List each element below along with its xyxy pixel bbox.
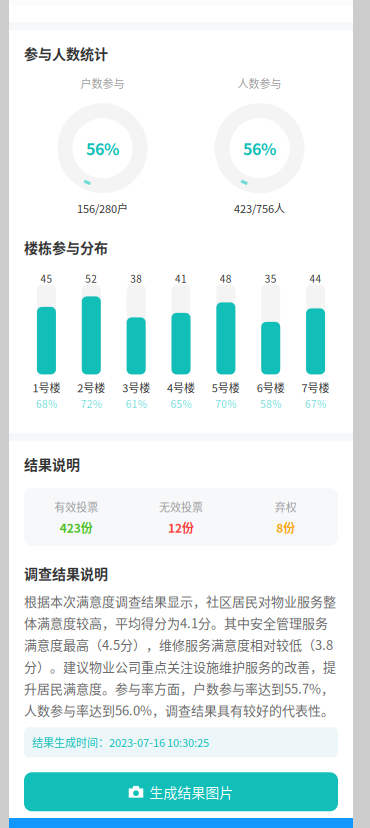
staticText: 35 [265, 271, 277, 286]
staticText: 3号楼 [122, 379, 150, 395]
staticText: 2号楼 [77, 379, 105, 395]
staticText: 8份 [276, 519, 295, 536]
staticText: 423/756人 [234, 200, 285, 216]
staticText: 楼栋参与分布 [24, 237, 108, 257]
staticText: 1号楼 [32, 379, 60, 395]
staticText: 人数参与 [237, 75, 281, 91]
staticText: 弃权 [275, 499, 297, 514]
staticText: 67% [305, 396, 326, 411]
button[interactable]: 生成结果图片 [24, 772, 338, 811]
staticText: 70% [215, 396, 236, 411]
staticText: 156/280户 [77, 200, 128, 216]
staticText: 结果说明 [24, 454, 80, 474]
staticText: 6号楼 [257, 379, 285, 395]
staticText: 参与人数统计 [24, 43, 108, 63]
staticText: 38 [130, 271, 142, 286]
staticText: 65% [170, 396, 191, 411]
staticText: 58% [260, 396, 281, 411]
staticText: 56% [243, 137, 276, 160]
staticText: 41 [175, 271, 187, 286]
staticText: 52 [85, 271, 97, 286]
staticText: 68% [36, 396, 57, 411]
staticText: 56% [86, 137, 119, 160]
staticText: 调查结果说明 [24, 563, 108, 583]
staticText: 户数参与 [80, 75, 124, 91]
staticText: 423份 [60, 519, 93, 536]
staticText: 根据本次满意度调查结果显示，社区居民对物业服务整体满意度较高，平均得分为4.1分… [24, 591, 336, 719]
staticText: 无效投票 [159, 499, 203, 514]
staticText: 有效投票 [54, 499, 98, 514]
staticText: 结果生成时间：2023-07-16 10:30:25 [32, 734, 209, 750]
staticText: 7号楼 [302, 379, 330, 395]
staticText: 45 [40, 271, 52, 286]
staticText: 生成结果图片 [149, 782, 233, 802]
staticText: 4号楼 [167, 379, 195, 395]
staticText: 72% [81, 396, 102, 411]
staticText: 5号楼 [212, 379, 240, 395]
staticText: 61% [126, 396, 147, 411]
staticText: 12份 [168, 519, 194, 536]
staticText: 44 [310, 271, 322, 286]
staticText: 48 [220, 271, 232, 286]
